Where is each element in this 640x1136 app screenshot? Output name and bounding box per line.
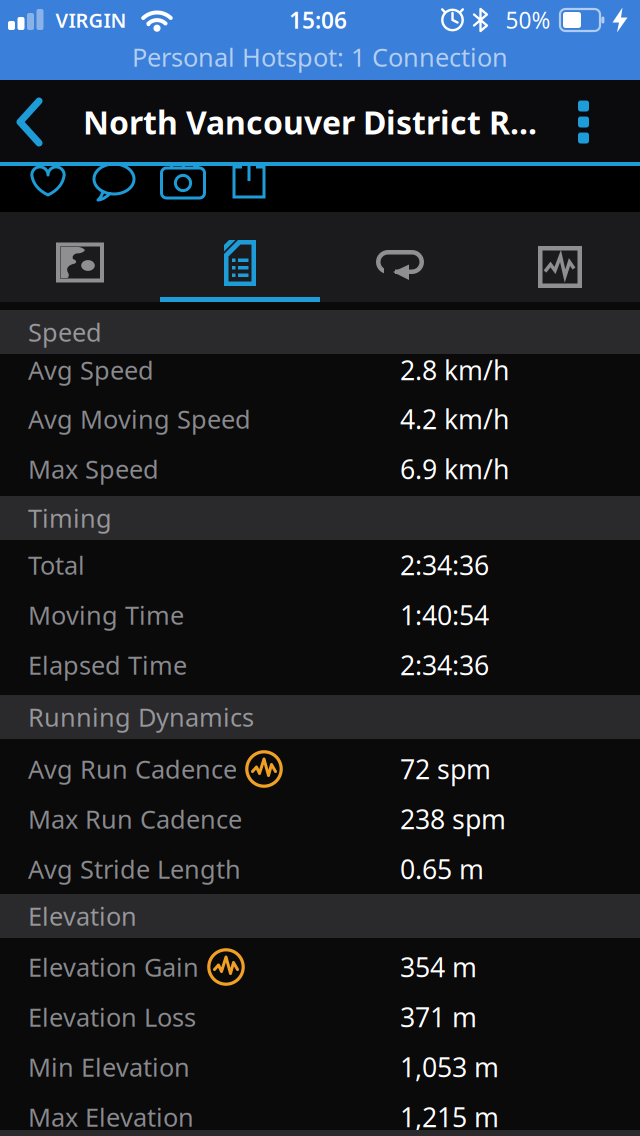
staticText: Personal Hotspot: 1 Connection (132, 40, 508, 74)
staticText: VIRGIN (55, 7, 126, 33)
staticText: 371 m (400, 999, 477, 1035)
button[interactable] (28, 163, 68, 199)
staticText: 2.8 km/h (400, 352, 509, 388)
staticText: Total (28, 548, 85, 582)
staticText: Avg Run Cadence (28, 752, 237, 786)
staticText: Max Speed (28, 452, 159, 486)
staticText: 15:06 (289, 5, 347, 35)
button[interactable] (480, 212, 640, 302)
staticText: 50% (505, 5, 550, 35)
staticText: Speed (28, 315, 102, 349)
staticText: Elevation Gain (28, 950, 199, 984)
staticText: Elapsed Time (28, 648, 187, 682)
staticText: 72 spm (400, 751, 491, 787)
staticText: 1,053 m (400, 1049, 499, 1085)
staticText: Running Dynamics (28, 700, 254, 734)
button[interactable] (161, 164, 205, 198)
staticText: 1,215 m (400, 1099, 499, 1135)
staticText: Avg Stride Length (28, 852, 241, 886)
staticText: Max Elevation (28, 1100, 194, 1134)
staticText: 1:40:54 (400, 597, 489, 633)
staticText: North Vancouver District R... (83, 101, 537, 143)
staticText: Max Run Cadence (28, 802, 242, 836)
staticText: Elevation (28, 899, 137, 933)
staticText: 6.9 km/h (400, 451, 509, 487)
staticText: 2:34:36 (400, 647, 489, 683)
staticText: 2:34:36 (400, 547, 489, 583)
staticText: Timing (28, 501, 112, 535)
button[interactable] (0, 212, 160, 302)
button[interactable] (93, 163, 135, 203)
button[interactable] (160, 212, 320, 302)
button[interactable] (320, 212, 480, 302)
staticText: 0.65 m (400, 851, 484, 887)
button[interactable] (8, 94, 52, 150)
staticText: Avg Speed (28, 353, 154, 387)
staticText: Avg Moving Speed (28, 402, 251, 436)
button[interactable] (563, 92, 603, 152)
button[interactable] (207, 948, 245, 986)
staticText: Moving Time (28, 598, 184, 632)
staticText: Elevation Loss (28, 1000, 196, 1034)
staticText: 238 spm (400, 801, 506, 837)
button[interactable] (233, 164, 265, 198)
button[interactable] (245, 750, 283, 788)
staticText: 4.2 km/h (400, 401, 509, 437)
staticText: 354 m (400, 949, 477, 985)
staticText: Min Elevation (28, 1050, 190, 1084)
